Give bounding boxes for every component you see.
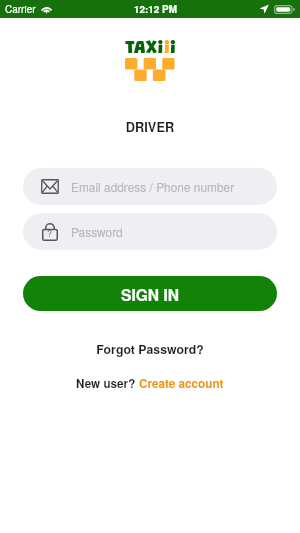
staticText: TAXi	[125, 39, 164, 58]
button[interactable]: ?	[23, 213, 277, 250]
button[interactable]: Email address / Phone number	[23, 168, 277, 205]
staticText: 12:12 PM	[134, 2, 177, 16]
staticText: Password	[71, 223, 123, 240]
staticText: i	[164, 39, 170, 58]
button[interactable]: Create account	[139, 375, 224, 392]
staticText: New user?	[76, 375, 139, 392]
staticText: SIGN IN	[121, 283, 180, 305]
staticText: Carrier	[5, 2, 36, 16]
button[interactable]: Forgot Password?	[0, 340, 300, 358]
staticText: i	[170, 39, 176, 58]
button[interactable]: SIGN IN	[23, 276, 277, 311]
staticText: ?	[47, 227, 53, 240]
staticText: Email address / Phone number	[71, 178, 235, 195]
staticText: DRIVER	[0, 118, 300, 136]
